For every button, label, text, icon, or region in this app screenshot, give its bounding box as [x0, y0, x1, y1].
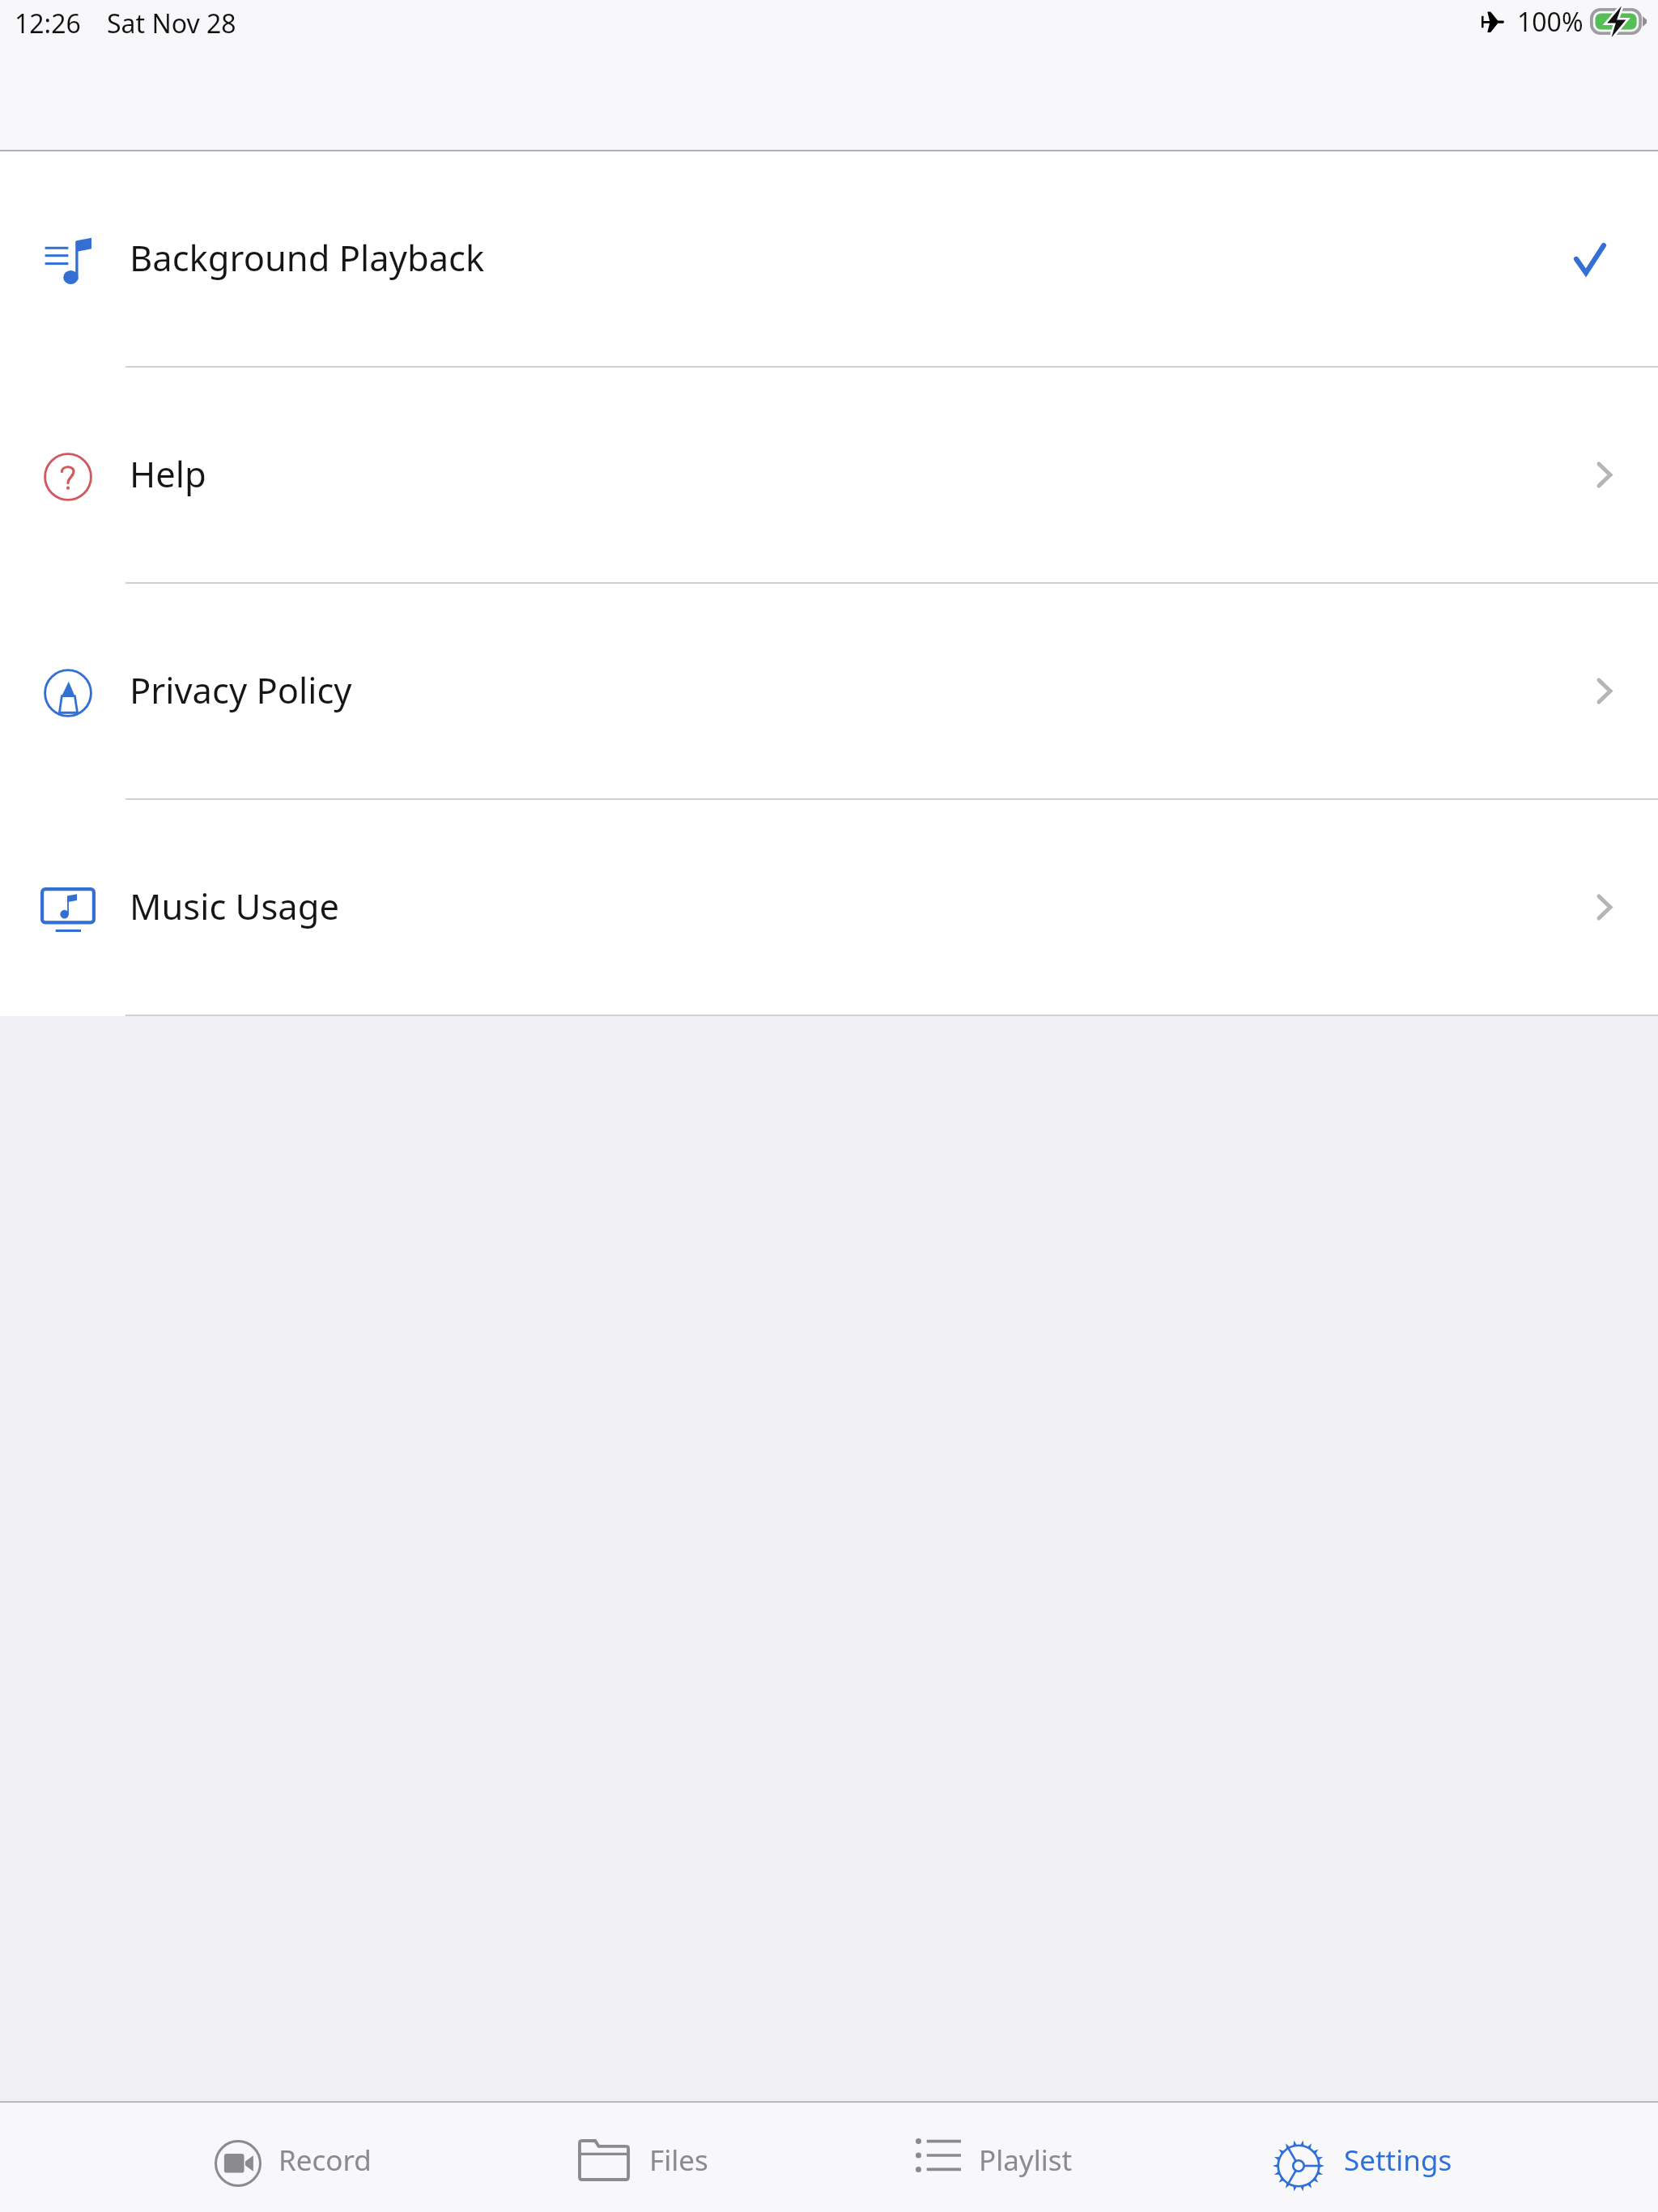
other: Enabled: [1576, 245, 1604, 273]
other: Airplane mode on: [1482, 11, 1504, 32]
button[interactable]: Files: [578, 2141, 708, 2183]
other: Battery full, charging: [1590, 8, 1647, 35]
staticText: 100%: [1517, 4, 1584, 40]
staticText: Help: [130, 449, 206, 497]
staticText: Sat Nov 28: [107, 6, 236, 41]
staticText: Record: [278, 2141, 372, 2180]
staticText: Playlist: [979, 2141, 1073, 2180]
staticText: Background Playback: [130, 233, 485, 281]
button[interactable]: Record: [215, 2138, 372, 2185]
staticText: Music Usage: [130, 882, 339, 929]
staticText: Settings: [1344, 2141, 1452, 2180]
other: Open: [1599, 680, 1610, 702]
button[interactable]: Playlist: [916, 2142, 1073, 2181]
button[interactable]: Settings: [1273, 2136, 1452, 2188]
staticText: Privacy Policy: [130, 666, 352, 713]
button[interactable]: Help: [0, 368, 1658, 584]
other: Open: [1599, 464, 1610, 486]
button[interactable]: Privacy Policy: [0, 584, 1658, 800]
other: Open: [1599, 896, 1610, 918]
staticText: Files: [649, 2141, 708, 2180]
button[interactable]: Music Usage: [0, 800, 1658, 1016]
staticText: 12:26: [15, 6, 81, 41]
button[interactable]: Background Playback: [0, 151, 1658, 368]
